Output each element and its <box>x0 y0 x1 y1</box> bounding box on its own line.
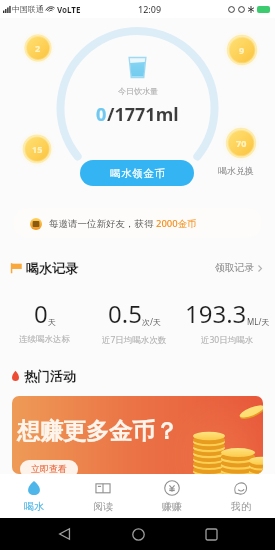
staticText: VoLTE <box>57 4 81 15</box>
staticText: 天 <box>48 317 56 327</box>
button[interactable]: coin 70 <box>222 124 260 162</box>
button[interactable]: 赚赚 <box>137 474 206 518</box>
button[interactable]: 想赚更多金币？ <box>12 396 263 474</box>
button[interactable]: coin 15 <box>19 131 55 167</box>
button[interactable]: 喝水领金币 <box>80 160 194 186</box>
staticText: 70 <box>236 137 247 149</box>
staticText: /1771ml <box>107 102 179 127</box>
button[interactable]: 每邀请一位新好友，获得 <box>13 208 262 238</box>
button[interactable]: coin 2 <box>21 31 55 65</box>
staticText: 今日饮水量 <box>118 86 158 96</box>
staticText: 15 <box>32 143 43 155</box>
staticText: 赚赚 <box>162 500 182 513</box>
button[interactable]: coin 9 <box>223 31 261 69</box>
staticText: 次/天 <box>142 316 161 327</box>
staticText: 每邀请一位新好友，获得 <box>49 217 156 230</box>
staticText: 9 <box>239 44 245 56</box>
staticText: 中国联通 <box>12 4 44 14</box>
staticText: 领取记录 <box>215 262 255 274</box>
button[interactable]: 阅读 <box>68 474 137 518</box>
button[interactable]: Back <box>55 525 73 543</box>
staticText: 热门活动 <box>24 368 76 384</box>
button[interactable]: Home <box>129 525 147 543</box>
staticText: 立即查看 <box>31 463 67 474</box>
staticText: 喝水记录 <box>26 260 78 276</box>
staticText: 0.5 <box>108 297 142 330</box>
staticText: ML/天 <box>247 316 270 327</box>
staticText: 0 <box>34 297 48 330</box>
button[interactable]: 领取记录 <box>215 262 262 274</box>
staticText: 12:09 <box>138 3 162 15</box>
staticText: 近7日均喝水次数 <box>102 334 167 346</box>
staticText: 0 <box>96 102 107 127</box>
staticText: 近30日均喝水 <box>201 334 254 346</box>
button[interactable]: 喝水 <box>0 474 68 518</box>
button[interactable]: 我的 <box>206 474 275 518</box>
button[interactable]: 立即查看 <box>31 463 67 474</box>
staticText: 2 <box>35 42 41 54</box>
staticText: 喝水 <box>24 500 44 513</box>
staticText: 我的 <box>231 500 251 513</box>
staticText: 想赚更多金币？ <box>17 417 178 446</box>
staticText: 连续喝水达标 <box>19 334 70 345</box>
staticText: 喝水领金币 <box>110 167 165 180</box>
staticText: 喝水兑换 <box>218 165 254 176</box>
staticText: 阅读 <box>93 500 113 513</box>
staticText: 2000金币 <box>156 217 197 230</box>
button[interactable]: Recents <box>202 525 220 543</box>
staticText: 193.3 <box>185 297 247 330</box>
